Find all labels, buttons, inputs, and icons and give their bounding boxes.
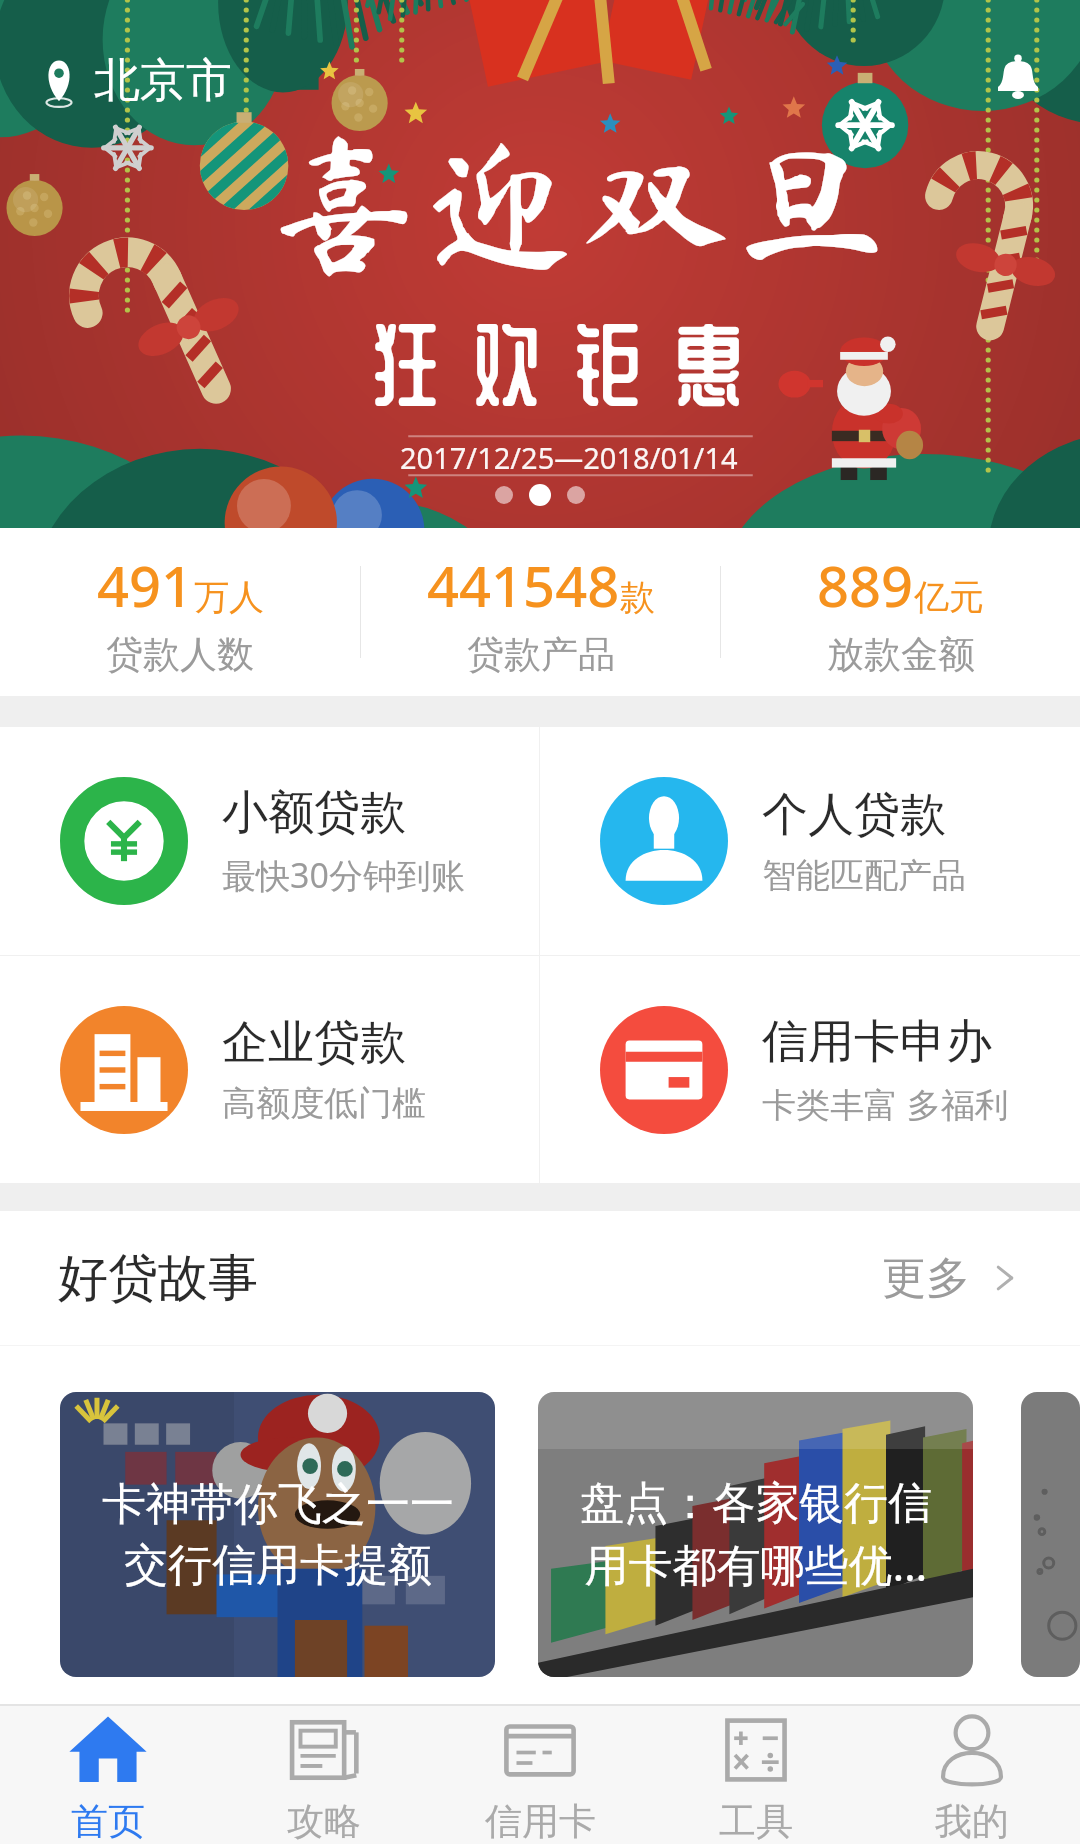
- staticText: 889: [817, 547, 914, 623]
- staticText: 2017/12/25—2018/01/14: [400, 438, 738, 477]
- button[interactable]: 信用卡: [432, 1706, 648, 1844]
- staticText: 信用卡申办: [762, 1013, 992, 1071]
- staticText: 万人: [194, 575, 264, 619]
- staticText: 更多: [882, 1251, 970, 1306]
- button[interactable]: 工具: [648, 1706, 864, 1844]
- staticText: 卡类丰富 多福利: [762, 1081, 1009, 1127]
- staticText: 小额贷款: [222, 784, 406, 842]
- staticText: 企业贷款: [222, 1014, 406, 1072]
- button[interactable]: 889: [721, 528, 1080, 696]
- staticText: 我的: [935, 1798, 1009, 1844]
- staticText: 盘点：各家银行信 用卡都有哪些优…: [580, 1476, 932, 1594]
- staticText: 信用卡: [485, 1798, 596, 1844]
- staticText: 首页: [71, 1798, 145, 1844]
- button[interactable]: 小额贷款: [0, 727, 539, 955]
- staticText: 高额度低门槛: [222, 1082, 426, 1125]
- staticText: 狂 欢 钜 惠: [371, 318, 751, 408]
- staticText: 贷款产品: [467, 631, 615, 678]
- staticText: 个人贷款: [762, 786, 946, 844]
- button[interactable]: [1021, 1392, 1080, 1677]
- staticText: 工具: [719, 1798, 793, 1844]
- staticText: 贷款人数: [106, 631, 254, 678]
- button[interactable]: 好贷故事: [0, 1211, 1080, 1345]
- staticText: 款: [620, 575, 655, 619]
- staticText: 491: [97, 547, 194, 623]
- button[interactable]: Notifications: [990, 48, 1046, 104]
- staticText: 好贷故事: [58, 1247, 258, 1310]
- button[interactable]: 我的: [864, 1706, 1080, 1844]
- button[interactable]: 个人贷款: [540, 727, 1080, 955]
- button[interactable]: 首页: [0, 1706, 216, 1844]
- staticText: 北京市: [94, 52, 232, 110]
- staticText: 智能匹配产品: [762, 854, 966, 897]
- staticText: 441548: [427, 547, 620, 623]
- button[interactable]: 北京市: [32, 48, 236, 114]
- staticText: 亿元: [914, 575, 984, 619]
- button[interactable]: 卡神带你飞之一一 交行信用卡提额: [60, 1392, 495, 1677]
- button[interactable]: 企业贷款: [0, 956, 539, 1183]
- staticText: 攻略: [287, 1798, 361, 1844]
- staticText: 放款金额: [827, 631, 975, 678]
- staticText: 最快30分钟到账: [222, 852, 465, 898]
- button[interactable]: 攻略: [216, 1706, 432, 1844]
- button[interactable]: 盘点：各家银行信 用卡都有哪些优…: [538, 1392, 973, 1677]
- button[interactable]: 441548: [361, 528, 720, 696]
- staticText: 卡神带你飞之一一 交行信用卡提额: [102, 1477, 454, 1593]
- button[interactable]: 信用卡申办: [540, 956, 1080, 1183]
- button[interactable]: 491: [0, 528, 360, 696]
- staticText: 喜迎双旦: [268, 126, 892, 278]
